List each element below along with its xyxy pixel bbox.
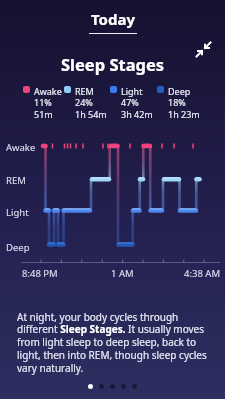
button[interactable] bbox=[121, 384, 126, 389]
button[interactable]: Today bbox=[89, 9, 137, 34]
staticText: Awake 11% 51m bbox=[34, 85, 62, 121]
staticText: At night, your body cycles through diffe… bbox=[17, 310, 207, 375]
button[interactable] bbox=[99, 384, 104, 389]
button[interactable]: REM 24% 1h 54m bbox=[64, 85, 96, 121]
staticText: REM bbox=[6, 174, 26, 187]
staticText: Deep 18% 1h 23m bbox=[168, 85, 200, 121]
button[interactable] bbox=[132, 384, 137, 389]
staticText: Sleep Stages bbox=[61, 53, 165, 75]
staticText: Awake bbox=[6, 141, 36, 154]
staticText: 8:48 PM bbox=[22, 267, 58, 280]
button[interactable] bbox=[195, 41, 212, 58]
button[interactable]: Light 47% 3h 42m bbox=[110, 85, 142, 121]
button[interactable]: Awake 11% 51m bbox=[23, 85, 51, 121]
staticText: Today bbox=[91, 9, 136, 29]
staticText: 4:38 AM bbox=[184, 267, 221, 280]
button[interactable] bbox=[110, 384, 115, 389]
staticText: Light bbox=[6, 206, 29, 219]
staticText: Deep bbox=[6, 241, 30, 254]
staticText: Light 47% 3h 42m bbox=[121, 85, 153, 121]
staticText: REM 24% 1h 54m bbox=[75, 85, 107, 121]
button[interactable]: Deep 18% 1h 23m bbox=[157, 85, 189, 121]
button[interactable] bbox=[88, 384, 93, 389]
staticText: 1 AM bbox=[111, 267, 134, 280]
